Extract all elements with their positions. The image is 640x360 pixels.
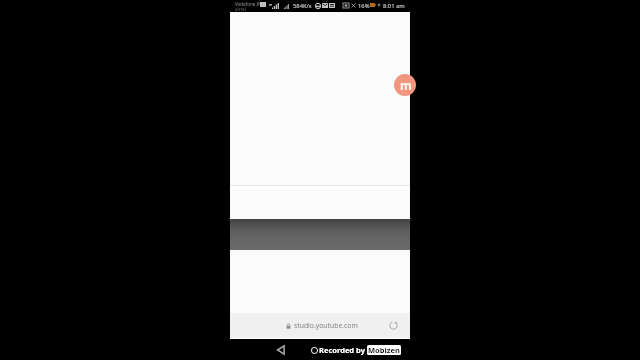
staticText: Vodafone IN xyxy=(235,1,262,7)
staticText: 8:01 am xyxy=(383,2,405,10)
button[interactable]: studio.youtube.com xyxy=(230,313,410,338)
staticText: m xyxy=(400,77,412,93)
staticText: airtel xyxy=(235,6,246,12)
staticText: 16% xyxy=(358,2,370,10)
staticText: studio.youtube.com xyxy=(294,321,358,330)
button[interactable]: Back xyxy=(274,343,288,357)
staticText: Mobizen xyxy=(368,345,400,355)
staticText: Recorded by xyxy=(319,345,365,355)
staticText: 584K/s xyxy=(293,2,312,10)
button[interactable]: Reload xyxy=(389,321,398,330)
